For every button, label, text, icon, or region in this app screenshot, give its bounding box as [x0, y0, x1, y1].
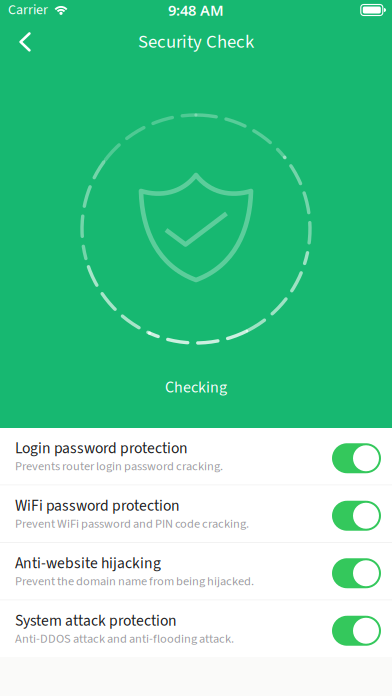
staticText: System attack protection [15, 610, 177, 632]
staticText: Login password protection [15, 437, 188, 459]
staticText: WiFi password protection [15, 495, 180, 517]
staticText: Security Check [138, 29, 254, 55]
staticText: Prevents router login password cracking. [15, 457, 223, 475]
button[interactable]: Login password protection [0, 428, 392, 485]
button[interactable]: WiFi password protection [0, 485, 392, 543]
staticText: Prevent WiFi password and PIN code crack… [15, 515, 249, 533]
staticText: Anti-website hijacking [15, 552, 161, 574]
staticText: Prevent the domain name from being hijac… [15, 572, 254, 590]
staticText: Checking [165, 376, 227, 399]
button[interactable]: Back [0, 20, 45, 64]
button[interactable]: Anti-website hijacking [0, 543, 392, 600]
staticText: Carrier [8, 0, 48, 20]
button[interactable]: System attack protection [0, 600, 392, 657]
staticText: Anti-DDOS attack and anti-flooding attac… [15, 630, 234, 648]
staticText: 9:48 AM [168, 0, 224, 20]
